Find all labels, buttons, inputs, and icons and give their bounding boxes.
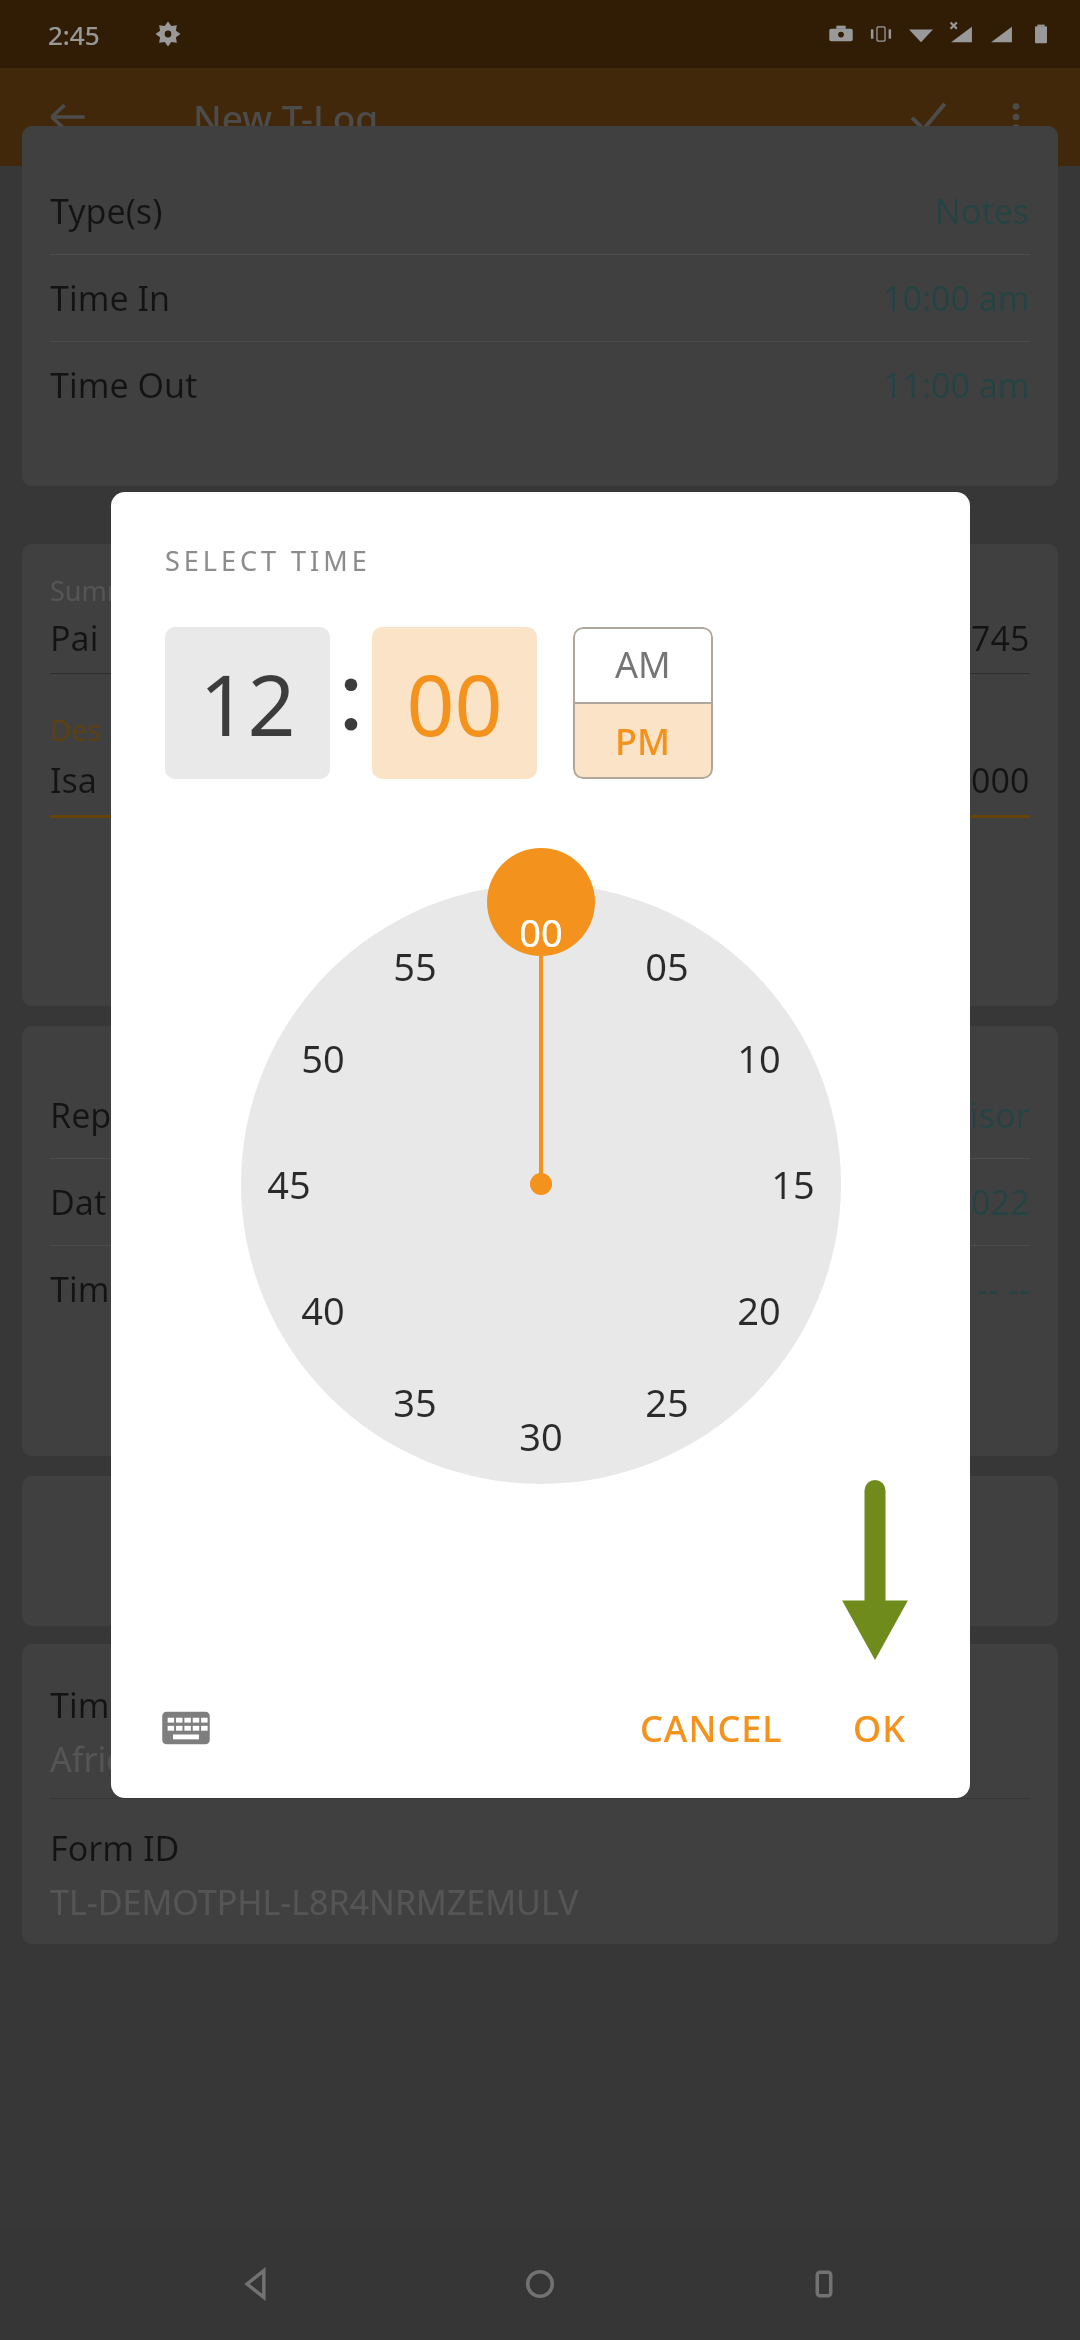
staticText: Time Zone bbox=[50, 1682, 218, 1728]
button[interactable]: Switch to text input bbox=[159, 1701, 213, 1755]
staticText: 50 bbox=[301, 1032, 345, 1084]
staticText: Tim bbox=[50, 1266, 110, 1312]
button[interactable]: 50 bbox=[280, 1015, 366, 1101]
staticText: 022 bbox=[971, 1179, 1030, 1225]
button[interactable]: Back bbox=[46, 95, 90, 139]
button[interactable]: 30 bbox=[498, 1393, 584, 1479]
staticText: 10:00 am bbox=[883, 275, 1030, 321]
button[interactable]: 10 bbox=[716, 1015, 802, 1101]
button[interactable]: 00 bbox=[498, 889, 584, 975]
button[interactable]: Save bbox=[906, 95, 950, 139]
staticText: OK bbox=[853, 1704, 906, 1753]
button[interactable]: OK bbox=[835, 1690, 924, 1767]
button[interactable]: 25 bbox=[624, 1359, 710, 1445]
staticText: 000 bbox=[971, 757, 1030, 803]
staticText: 30 bbox=[519, 1410, 563, 1462]
staticText: 10 bbox=[737, 1032, 781, 1084]
button[interactable]: 15 bbox=[750, 1141, 836, 1227]
button[interactable]: Recents bbox=[796, 2256, 852, 2312]
button[interactable]: Back bbox=[228, 2256, 284, 2312]
button[interactable]: 05 bbox=[624, 923, 710, 1009]
staticText: CANCEL bbox=[640, 1704, 783, 1753]
button[interactable]: 12 bbox=[165, 627, 330, 779]
staticText: PM bbox=[615, 717, 671, 766]
button[interactable]: 55 bbox=[372, 923, 458, 1009]
staticText: 45 bbox=[267, 1158, 311, 1210]
staticText: Des bbox=[50, 710, 102, 749]
staticText: Time In bbox=[50, 275, 171, 321]
staticText: -- -- bbox=[977, 1266, 1030, 1312]
staticText: 05 bbox=[645, 940, 689, 992]
button[interactable]: Home bbox=[512, 2256, 568, 2312]
staticText: 00 bbox=[519, 906, 563, 958]
staticText: Pai bbox=[50, 615, 99, 661]
staticText: 55 bbox=[393, 940, 437, 992]
button[interactable]: More options bbox=[994, 95, 1038, 139]
staticText: Type(s) bbox=[50, 188, 163, 234]
staticText: 2:45 bbox=[48, 17, 100, 52]
staticText: Africa/Kampala bbox=[50, 1736, 295, 1782]
staticText: Rep bbox=[50, 1092, 112, 1138]
button[interactable]: 45 bbox=[246, 1141, 332, 1227]
staticText: 745 bbox=[971, 615, 1030, 661]
staticText: 25 bbox=[645, 1376, 689, 1428]
staticText: Time Out bbox=[50, 362, 198, 408]
staticText: Form ID bbox=[50, 1825, 180, 1871]
staticText: Summary bbox=[50, 572, 173, 609]
button[interactable]: 00 bbox=[372, 627, 537, 779]
staticText: 40 bbox=[301, 1284, 345, 1336]
staticText: AM bbox=[615, 640, 671, 689]
button[interactable]: 35 bbox=[372, 1359, 458, 1445]
staticText: 35 bbox=[393, 1376, 437, 1428]
button[interactable]: PM bbox=[573, 704, 713, 779]
staticText: Notes bbox=[935, 188, 1030, 234]
button[interactable]: AM bbox=[573, 627, 713, 702]
staticText: SELECT TIME bbox=[165, 542, 371, 579]
staticText: 20 bbox=[737, 1284, 781, 1336]
staticText: 15 bbox=[771, 1158, 815, 1210]
button[interactable]: 40 bbox=[280, 1267, 366, 1353]
staticText: isor bbox=[970, 1092, 1030, 1138]
staticText: 11:00 am bbox=[883, 362, 1030, 408]
staticText: 12 bbox=[199, 646, 296, 760]
staticText: New T-Log bbox=[193, 92, 379, 142]
staticText: 00 bbox=[406, 646, 503, 760]
staticText: Isa bbox=[50, 757, 97, 803]
button[interactable]: CANCEL bbox=[622, 1690, 801, 1767]
staticText: Dat bbox=[50, 1179, 107, 1225]
button[interactable]: 20 bbox=[716, 1267, 802, 1353]
staticText: TL-DEMOTPHL-L8R4NRMZEMULV bbox=[50, 1879, 579, 1925]
